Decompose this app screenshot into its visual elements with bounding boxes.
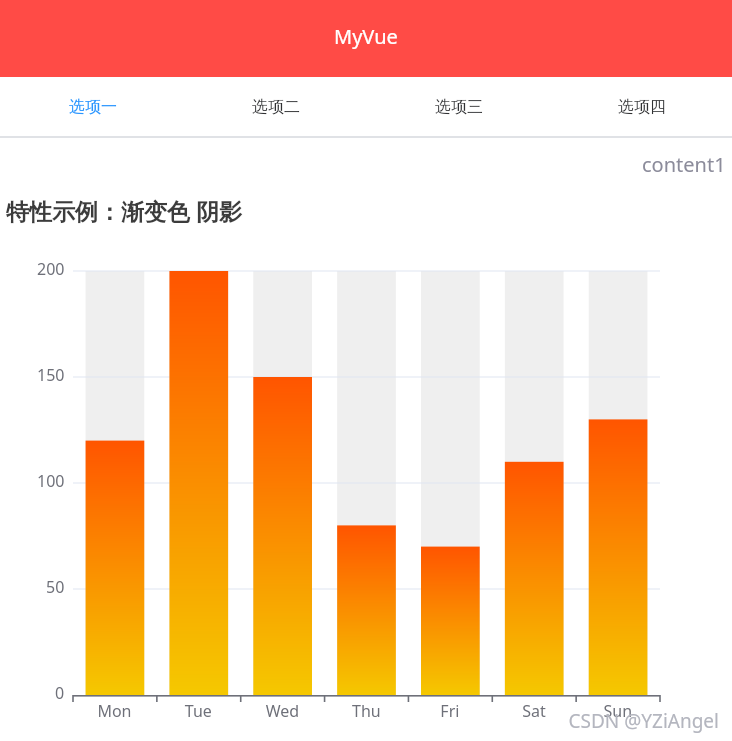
staticText: MyVue xyxy=(334,23,398,50)
staticText: 选项三 xyxy=(435,97,483,117)
button[interactable]: 选项三 xyxy=(366,77,549,135)
staticText: 选项一 xyxy=(69,97,117,117)
button[interactable]: 选项一 xyxy=(0,77,183,135)
button[interactable]: MyVue xyxy=(0,0,732,77)
staticText: 选项二 xyxy=(252,97,300,117)
button[interactable]: 选项四 xyxy=(549,77,732,135)
button[interactable]: content1 xyxy=(634,145,732,184)
staticText: content1 xyxy=(642,151,726,178)
staticText: 选项四 xyxy=(618,97,666,117)
button[interactable]: 选项二 xyxy=(183,77,366,135)
staticText: 特性示例：渐变色 阴影 xyxy=(6,195,242,226)
other: Weekly gradient bar chart xyxy=(0,0,732,741)
